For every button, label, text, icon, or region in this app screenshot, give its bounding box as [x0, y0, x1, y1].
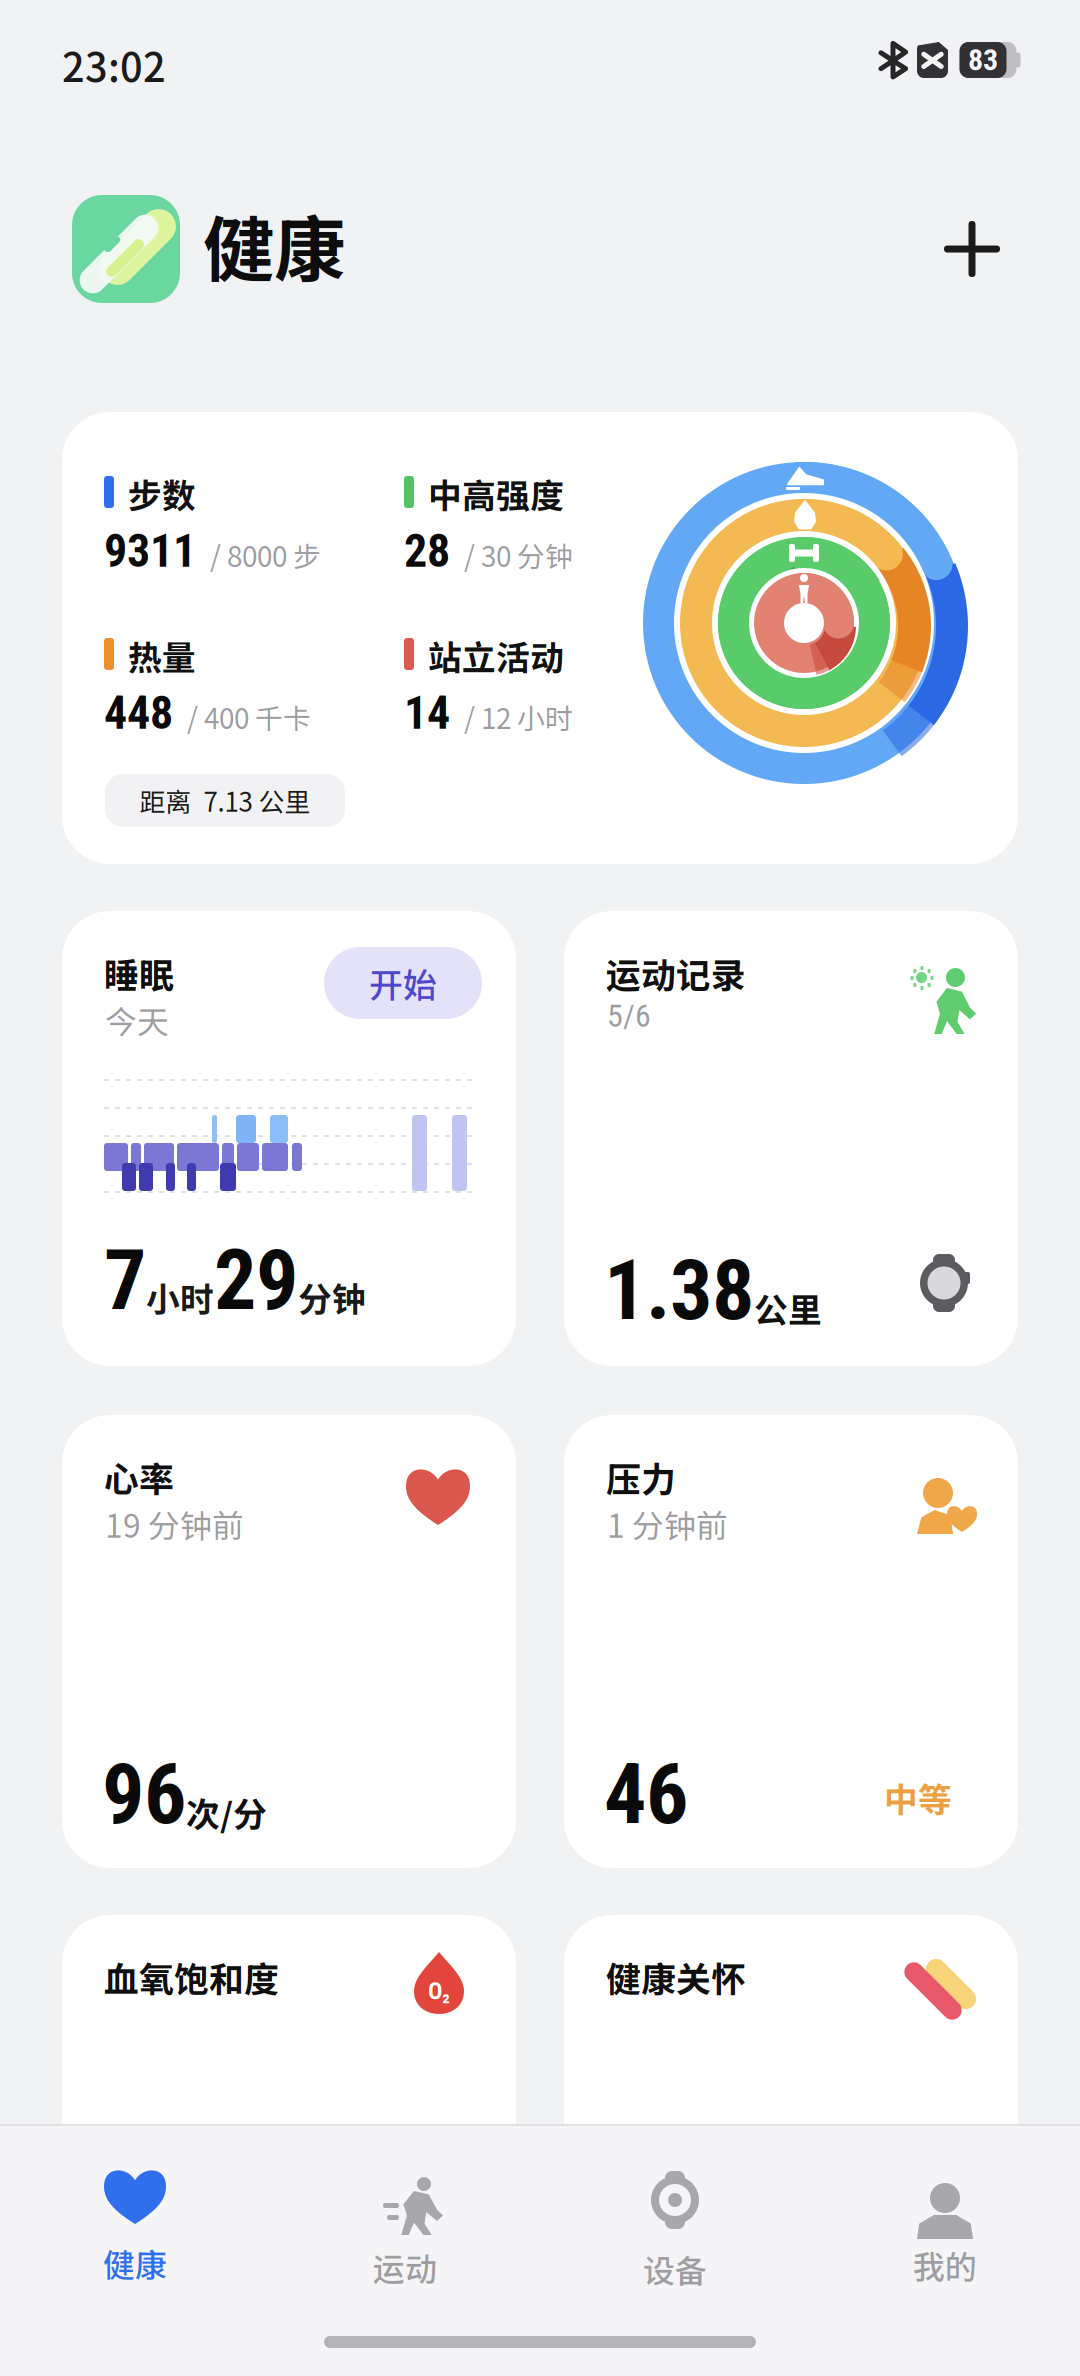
- staticText: 9311: [104, 524, 196, 578]
- staticText: 96: [102, 1745, 186, 1843]
- staticText: / 400 千卡: [187, 697, 311, 737]
- staticText: 我的: [913, 2242, 977, 2288]
- button[interactable]: 健康关怀: [564, 1915, 1018, 2215]
- staticText: 距离 7.13 公里: [139, 782, 310, 819]
- staticText: 1 分钟前: [607, 1501, 728, 1547]
- staticText: 设备: [643, 2246, 707, 2292]
- staticText: 公里: [754, 1284, 822, 1332]
- staticText: 心率: [104, 1452, 174, 1502]
- staticText: 健康关怀: [606, 1952, 746, 2002]
- staticText: 睡眠: [104, 948, 174, 998]
- staticText: 健康: [203, 193, 345, 296]
- button[interactable]: 设备: [540, 2124, 810, 2298]
- staticText: / 12 小时: [464, 697, 573, 737]
- staticText: O₂: [428, 1977, 450, 2005]
- staticText: 5/6: [607, 997, 651, 1034]
- staticText: 小时: [146, 1273, 214, 1321]
- staticText: 46: [604, 1745, 688, 1843]
- staticText: / 30 分钟: [464, 535, 573, 575]
- staticText: 19 分钟前: [105, 1501, 244, 1547]
- staticText: 站立活动: [428, 631, 564, 680]
- staticText: 448: [104, 686, 173, 740]
- button[interactable]: 睡眠: [62, 911, 516, 1366]
- staticText: / 8000 步: [210, 535, 321, 575]
- button[interactable]: 血氧饱和度: [62, 1915, 516, 2215]
- button[interactable]: 开始: [324, 947, 482, 1019]
- staticText: 血氧饱和度: [104, 1952, 279, 2002]
- staticText: 1.38: [604, 1241, 754, 1339]
- button[interactable]: 运动记录: [564, 911, 1018, 1366]
- staticText: 29: [214, 1231, 298, 1329]
- staticText: 运动记录: [606, 948, 746, 998]
- staticText: 压力: [606, 1452, 676, 1502]
- staticText: 83: [968, 42, 998, 78]
- button[interactable]: 运动: [270, 2124, 540, 2298]
- staticText: 开始: [369, 959, 437, 1007]
- staticText: 步数: [128, 469, 196, 518]
- staticText: 14: [404, 686, 450, 740]
- staticText: 中等: [884, 1773, 952, 1822]
- staticText: 热量: [128, 631, 196, 680]
- staticText: 次/分: [186, 1788, 267, 1836]
- button[interactable]: 健康: [0, 2124, 270, 2298]
- staticText: 23:02: [62, 36, 166, 93]
- button[interactable]: 步数: [62, 412, 1018, 864]
- staticText: 7: [104, 1231, 146, 1329]
- button[interactable]: 压力: [564, 1415, 1018, 1868]
- staticText: 28: [404, 524, 450, 578]
- staticText: 分钟: [298, 1273, 366, 1321]
- button[interactable]: 我的: [810, 2124, 1080, 2298]
- button[interactable]: 心率: [62, 1415, 516, 1868]
- staticText: 中高强度: [428, 469, 564, 518]
- button[interactable]: Add: [920, 197, 1024, 301]
- staticText: 今天: [105, 997, 169, 1043]
- staticText: 运动: [373, 2244, 437, 2290]
- staticText: 健康: [103, 2240, 167, 2286]
